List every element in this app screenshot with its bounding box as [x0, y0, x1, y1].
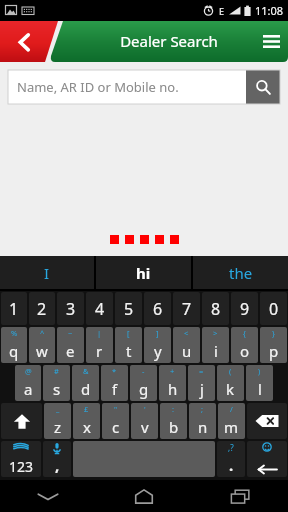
button[interactable]: |: [86, 327, 113, 363]
staticText: t: [126, 341, 132, 361]
staticText: |: [97, 328, 102, 338]
staticText: *: [112, 366, 117, 376]
staticText: hi: [136, 263, 151, 283]
staticText: n: [198, 417, 208, 437]
button[interactable]: (: [217, 365, 244, 401]
staticText: k: [226, 379, 235, 399]
staticText: p: [269, 341, 279, 361]
staticText: &: [83, 366, 89, 376]
button[interactable]: 4: [86, 292, 113, 325]
button[interactable]: 7: [173, 292, 200, 325]
button[interactable]: 6: [144, 292, 171, 325]
button[interactable]: Enter: [247, 441, 287, 477]
staticText: @: [25, 366, 32, 376]
staticText: }: [272, 328, 275, 338]
button[interactable]: #: [43, 365, 70, 401]
button[interactable]: ": [102, 403, 129, 439]
button[interactable]: the: [193, 256, 288, 289]
button[interactable]: 9: [231, 292, 258, 325]
staticText: 4: [95, 298, 105, 320]
button[interactable]: Name, AR ID or Mobile no.: [8, 70, 280, 104]
staticText: E: [219, 5, 225, 17]
staticText: (: [229, 366, 232, 376]
staticText: .: [229, 455, 234, 475]
button[interactable]: ): [246, 365, 273, 401]
staticText: I: [44, 263, 50, 283]
button[interactable]: hi: [96, 256, 191, 289]
staticText: ,?: [228, 442, 234, 453]
staticText: z: [54, 417, 62, 437]
staticText: a: [24, 379, 33, 399]
staticText: 0: [269, 298, 279, 320]
button[interactable]: Shift: [1, 403, 42, 439]
button[interactable]: 0: [260, 292, 287, 325]
staticText: ]: [156, 328, 159, 338]
button[interactable]: ,: [43, 441, 71, 477]
button[interactable]: &: [72, 365, 99, 401]
staticText: 6: [153, 298, 163, 320]
button[interactable]: Hide keyboard: [0, 480, 96, 512]
button[interactable]: /: [218, 403, 245, 439]
button[interactable]: 5: [115, 292, 142, 325]
button[interactable]: ~: [57, 327, 84, 363]
staticText: =: [199, 366, 204, 376]
button[interactable]: ;: [189, 403, 216, 439]
staticText: q: [9, 341, 19, 361]
button[interactable]: ]: [144, 327, 171, 363]
button[interactable]: *: [101, 365, 128, 401]
button[interactable]: :: [160, 403, 187, 439]
button[interactable]: 1: [1, 292, 27, 325]
staticText: y: [154, 341, 162, 361]
staticText: +: [170, 366, 175, 376]
button[interactable]: ,?: [217, 441, 245, 477]
button[interactable]: +: [159, 365, 186, 401]
staticText: 2: [37, 298, 47, 320]
button[interactable]: 123: [1, 441, 41, 477]
button[interactable]: ': [131, 403, 158, 439]
button[interactable]: ^: [29, 327, 55, 363]
staticText: s: [53, 379, 61, 399]
staticText: w: [36, 341, 48, 361]
button[interactable]: }: [260, 327, 287, 363]
button[interactable]: 8: [202, 292, 229, 325]
staticText: >: [213, 328, 218, 338]
button[interactable]: {: [231, 327, 258, 363]
staticText: j: [200, 379, 204, 399]
staticText: ,: [55, 455, 60, 475]
button[interactable]: 2: [29, 292, 55, 325]
button[interactable]: =: [188, 365, 215, 401]
button[interactable]: Recent apps: [192, 480, 288, 512]
button[interactable]: I: [0, 256, 94, 289]
staticText: Name, AR ID or Mobile no.: [17, 78, 246, 96]
staticText: 8: [211, 298, 221, 320]
button[interactable]: Menu: [254, 21, 288, 62]
staticText: ): [258, 366, 261, 376]
staticText: c: [112, 417, 120, 437]
button[interactable]: [: [115, 327, 142, 363]
button[interactable]: £: [73, 403, 100, 439]
button[interactable]: 3: [57, 292, 84, 325]
staticText: 3: [66, 298, 76, 320]
staticText: f: [112, 379, 118, 399]
staticText: i: [214, 341, 218, 361]
button[interactable]: _: [44, 403, 71, 439]
button[interactable]: Search: [246, 70, 280, 104]
button[interactable]: Backspace: [247, 403, 287, 439]
staticText: v: [141, 417, 149, 437]
button[interactable]: Back: [0, 21, 58, 62]
staticText: ': [144, 404, 146, 414]
staticText: [: [127, 328, 130, 338]
staticText: -: [142, 366, 145, 376]
staticText: £: [84, 404, 89, 414]
button[interactable]: <: [173, 327, 200, 363]
button[interactable]: >: [202, 327, 229, 363]
staticText: _: [56, 404, 60, 414]
button[interactable]: @: [15, 365, 41, 401]
button[interactable]: Home: [96, 480, 192, 512]
staticText: 123: [9, 457, 34, 476]
staticText: {: [243, 328, 246, 338]
button[interactable]: -: [130, 365, 157, 401]
button[interactable]: %: [1, 327, 27, 363]
staticText: ^: [40, 328, 45, 338]
